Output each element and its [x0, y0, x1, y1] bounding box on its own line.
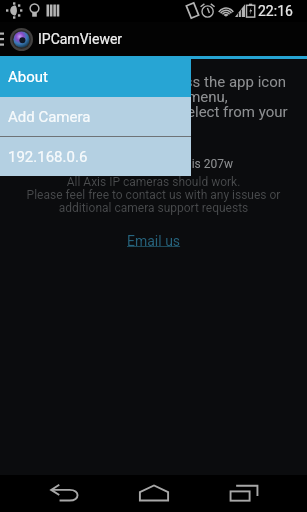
staticText: 192.168.0.6	[8, 148, 88, 166]
staticText: Add Camera	[8, 108, 91, 126]
staticText: About	[8, 68, 48, 86]
button[interactable]: Recent apps	[199, 475, 289, 512]
button[interactable]: Add Camera	[0, 97, 191, 136]
staticText: IPCamViewer	[38, 31, 123, 47]
staticText: To add a camera, long press the app icon…	[13, 73, 288, 121]
button[interactable]: Home	[109, 475, 199, 512]
button[interactable]: About	[0, 57, 191, 97]
button[interactable]: 192.168.0.6	[0, 137, 191, 176]
button[interactable]: Open navigation drawer	[0, 22, 5, 56]
button[interactable]: App icon	[10, 28, 33, 51]
staticText: The camera tested so far is 207w	[0, 157, 233, 171]
button[interactable]: Email us	[125, 232, 183, 250]
button[interactable]: Back	[19, 475, 109, 512]
staticText: All Axis IP cameras should work. Please …	[0, 175, 307, 215]
staticText: 22:16	[258, 3, 293, 19]
